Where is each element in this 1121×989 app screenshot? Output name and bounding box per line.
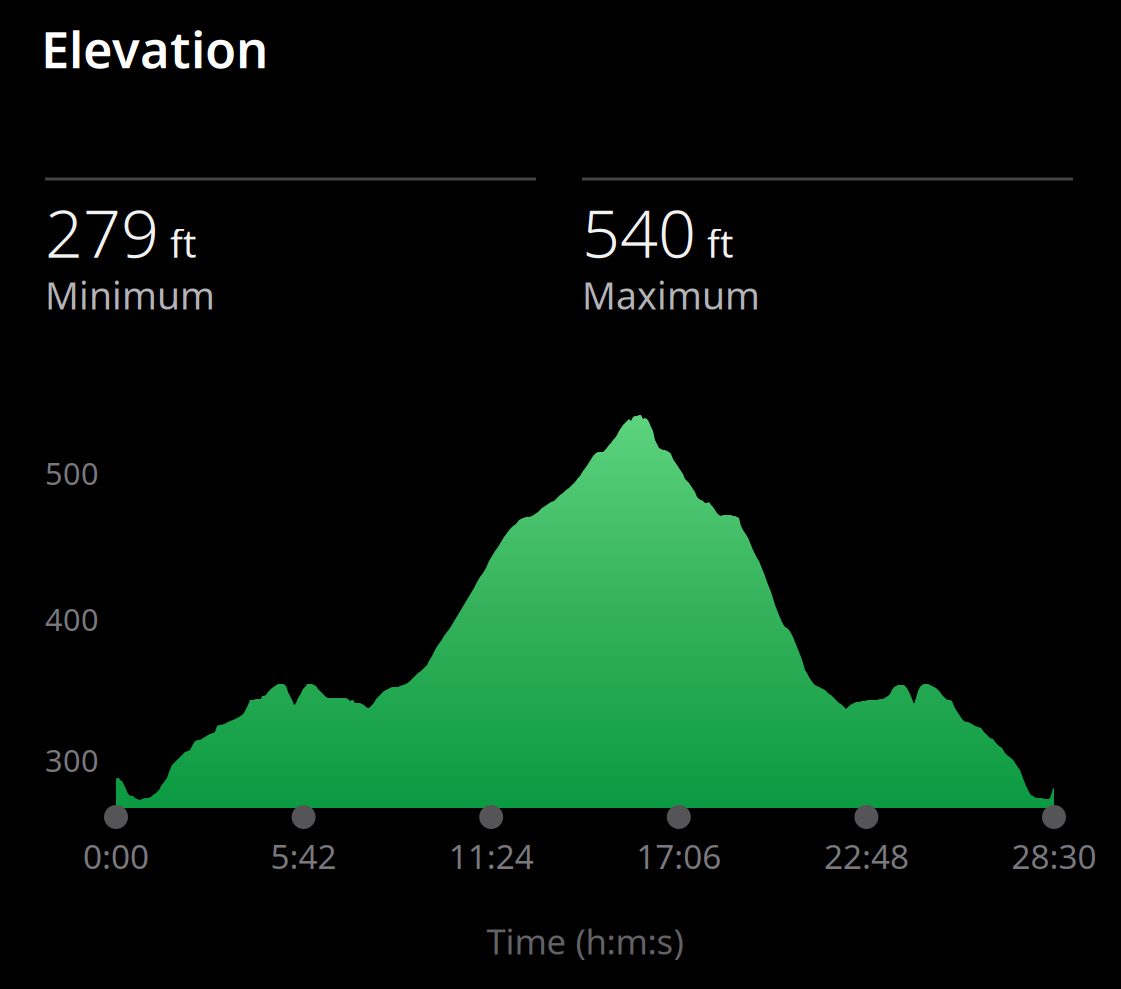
staticText: Time (h:m:s) — [486, 918, 683, 964]
staticText: 5:42 — [271, 834, 337, 878]
staticText: ft — [707, 219, 733, 268]
staticText: 11:24 — [449, 834, 534, 878]
staticText: Elevation — [41, 15, 268, 82]
staticText: ft — [170, 219, 196, 268]
staticText: 540 — [582, 188, 696, 276]
staticText: Maximum — [582, 270, 760, 320]
staticText: 28:30 — [1011, 834, 1096, 878]
staticText: 300 — [45, 740, 99, 780]
staticText: 400 — [45, 599, 99, 639]
staticText: 500 — [45, 453, 99, 493]
staticText: 17:06 — [636, 834, 721, 878]
staticText: 0:00 — [83, 834, 149, 878]
staticText: Minimum — [45, 270, 215, 320]
staticText: 279 — [45, 188, 159, 276]
staticText: 22:48 — [824, 834, 909, 878]
